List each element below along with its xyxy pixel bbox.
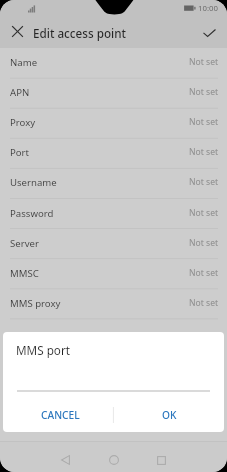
button[interactable]: Recents bbox=[146, 445, 176, 472]
button[interactable]: Home bbox=[99, 445, 129, 472]
staticText: APN bbox=[10, 86, 30, 99]
staticText: OK bbox=[162, 408, 177, 422]
button[interactable]: APN bbox=[0, 78, 227, 108]
staticText: MMS proxy bbox=[10, 297, 61, 310]
staticText: Not set bbox=[189, 86, 219, 98]
staticText: Not set bbox=[189, 207, 219, 219]
staticText: MMSC bbox=[10, 267, 39, 280]
staticText: Not set bbox=[189, 176, 219, 188]
button[interactable]: MMSC bbox=[0, 259, 227, 289]
staticText: CANCEL bbox=[41, 408, 80, 422]
button[interactable]: Back bbox=[50, 445, 80, 472]
staticText: Name bbox=[10, 56, 38, 69]
staticText: Password bbox=[10, 207, 54, 220]
button[interactable]: MMS proxy bbox=[0, 289, 227, 319]
staticText: MMS port bbox=[16, 342, 70, 358]
staticText: Edit access point bbox=[33, 25, 127, 41]
button[interactable]: CANCEL bbox=[4, 406, 117, 424]
staticText: Proxy bbox=[10, 116, 36, 129]
staticText: Not set bbox=[189, 267, 219, 279]
button[interactable]: Username bbox=[0, 168, 227, 198]
staticText: Not set bbox=[189, 237, 219, 249]
button[interactable]: Port bbox=[0, 138, 227, 168]
staticText: 10:00 bbox=[198, 3, 218, 14]
staticText: Not set bbox=[189, 116, 219, 128]
button[interactable]: Save bbox=[197, 20, 222, 45]
button[interactable]: OK bbox=[115, 406, 223, 424]
button[interactable]: Proxy bbox=[0, 108, 227, 138]
staticText: Port bbox=[10, 146, 30, 159]
staticText: Not set bbox=[189, 146, 219, 158]
staticText: Not set bbox=[189, 56, 219, 68]
button[interactable]: Name bbox=[0, 48, 227, 78]
staticText: Server bbox=[10, 237, 39, 250]
button[interactable]: Close bbox=[6, 20, 29, 43]
button[interactable]: Server bbox=[0, 229, 227, 259]
button[interactable]: Password bbox=[0, 199, 227, 229]
staticText: Username bbox=[10, 176, 57, 189]
staticText: Not set bbox=[189, 297, 219, 309]
